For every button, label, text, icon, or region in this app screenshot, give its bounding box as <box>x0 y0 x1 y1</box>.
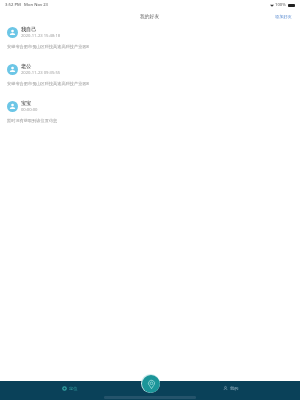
staticText: 老公 <box>21 63 32 69</box>
staticText: 暂时没有获取到该位置信息 <box>7 118 58 123</box>
staticText: 宝宝 <box>21 100 32 106</box>
button[interactable]: 宝宝 <box>0 97 300 134</box>
staticText: 添加好友 <box>275 14 292 19</box>
button[interactable]: 定位 <box>55 383 85 394</box>
staticText: 安徽省合肥市蜀山区科技高速高科技产业园8 <box>7 81 89 87</box>
staticText: 00:00:00 <box>21 107 38 113</box>
button[interactable]: 老公 <box>0 60 300 97</box>
button[interactable]: Locate <box>141 374 160 393</box>
staticText: 定位 <box>69 386 78 391</box>
staticText: 2020-11-23 15:48:18 <box>21 33 61 39</box>
button[interactable]: 添加好友 <box>267 11 300 22</box>
staticText: 我自己 <box>21 26 37 32</box>
staticText: 我的 <box>230 386 239 391</box>
button[interactable]: 我自己 <box>0 23 300 60</box>
button[interactable]: 我的 <box>216 383 246 394</box>
staticText: 2020-11-23 09:35:55 <box>21 70 61 76</box>
staticText: 100% <box>275 2 286 8</box>
staticText: 3:52 PM Mon Nov 23 <box>5 2 49 8</box>
staticText: 我的好友 <box>140 13 160 19</box>
staticText: 安徽省合肥市蜀山区科技高速高科技产业园8 <box>7 44 89 50</box>
